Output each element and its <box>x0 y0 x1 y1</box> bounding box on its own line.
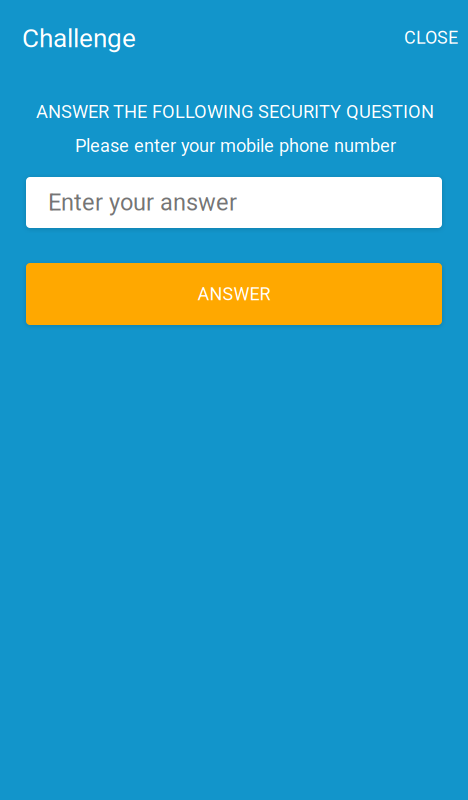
button[interactable]: ANSWER <box>26 263 442 325</box>
button[interactable]: CLOSE <box>394 15 468 60</box>
button[interactable]: Enter your answer <box>26 177 442 228</box>
staticText: CLOSE <box>404 27 458 48</box>
staticText: ANSWER <box>197 283 270 305</box>
staticText: Please enter your mobile phone number <box>75 135 396 156</box>
staticText: ANSWER THE FOLLOWING SECURITY QUESTION <box>36 101 434 122</box>
staticText: Challenge <box>22 23 136 54</box>
staticText: Enter your answer <box>48 189 237 216</box>
